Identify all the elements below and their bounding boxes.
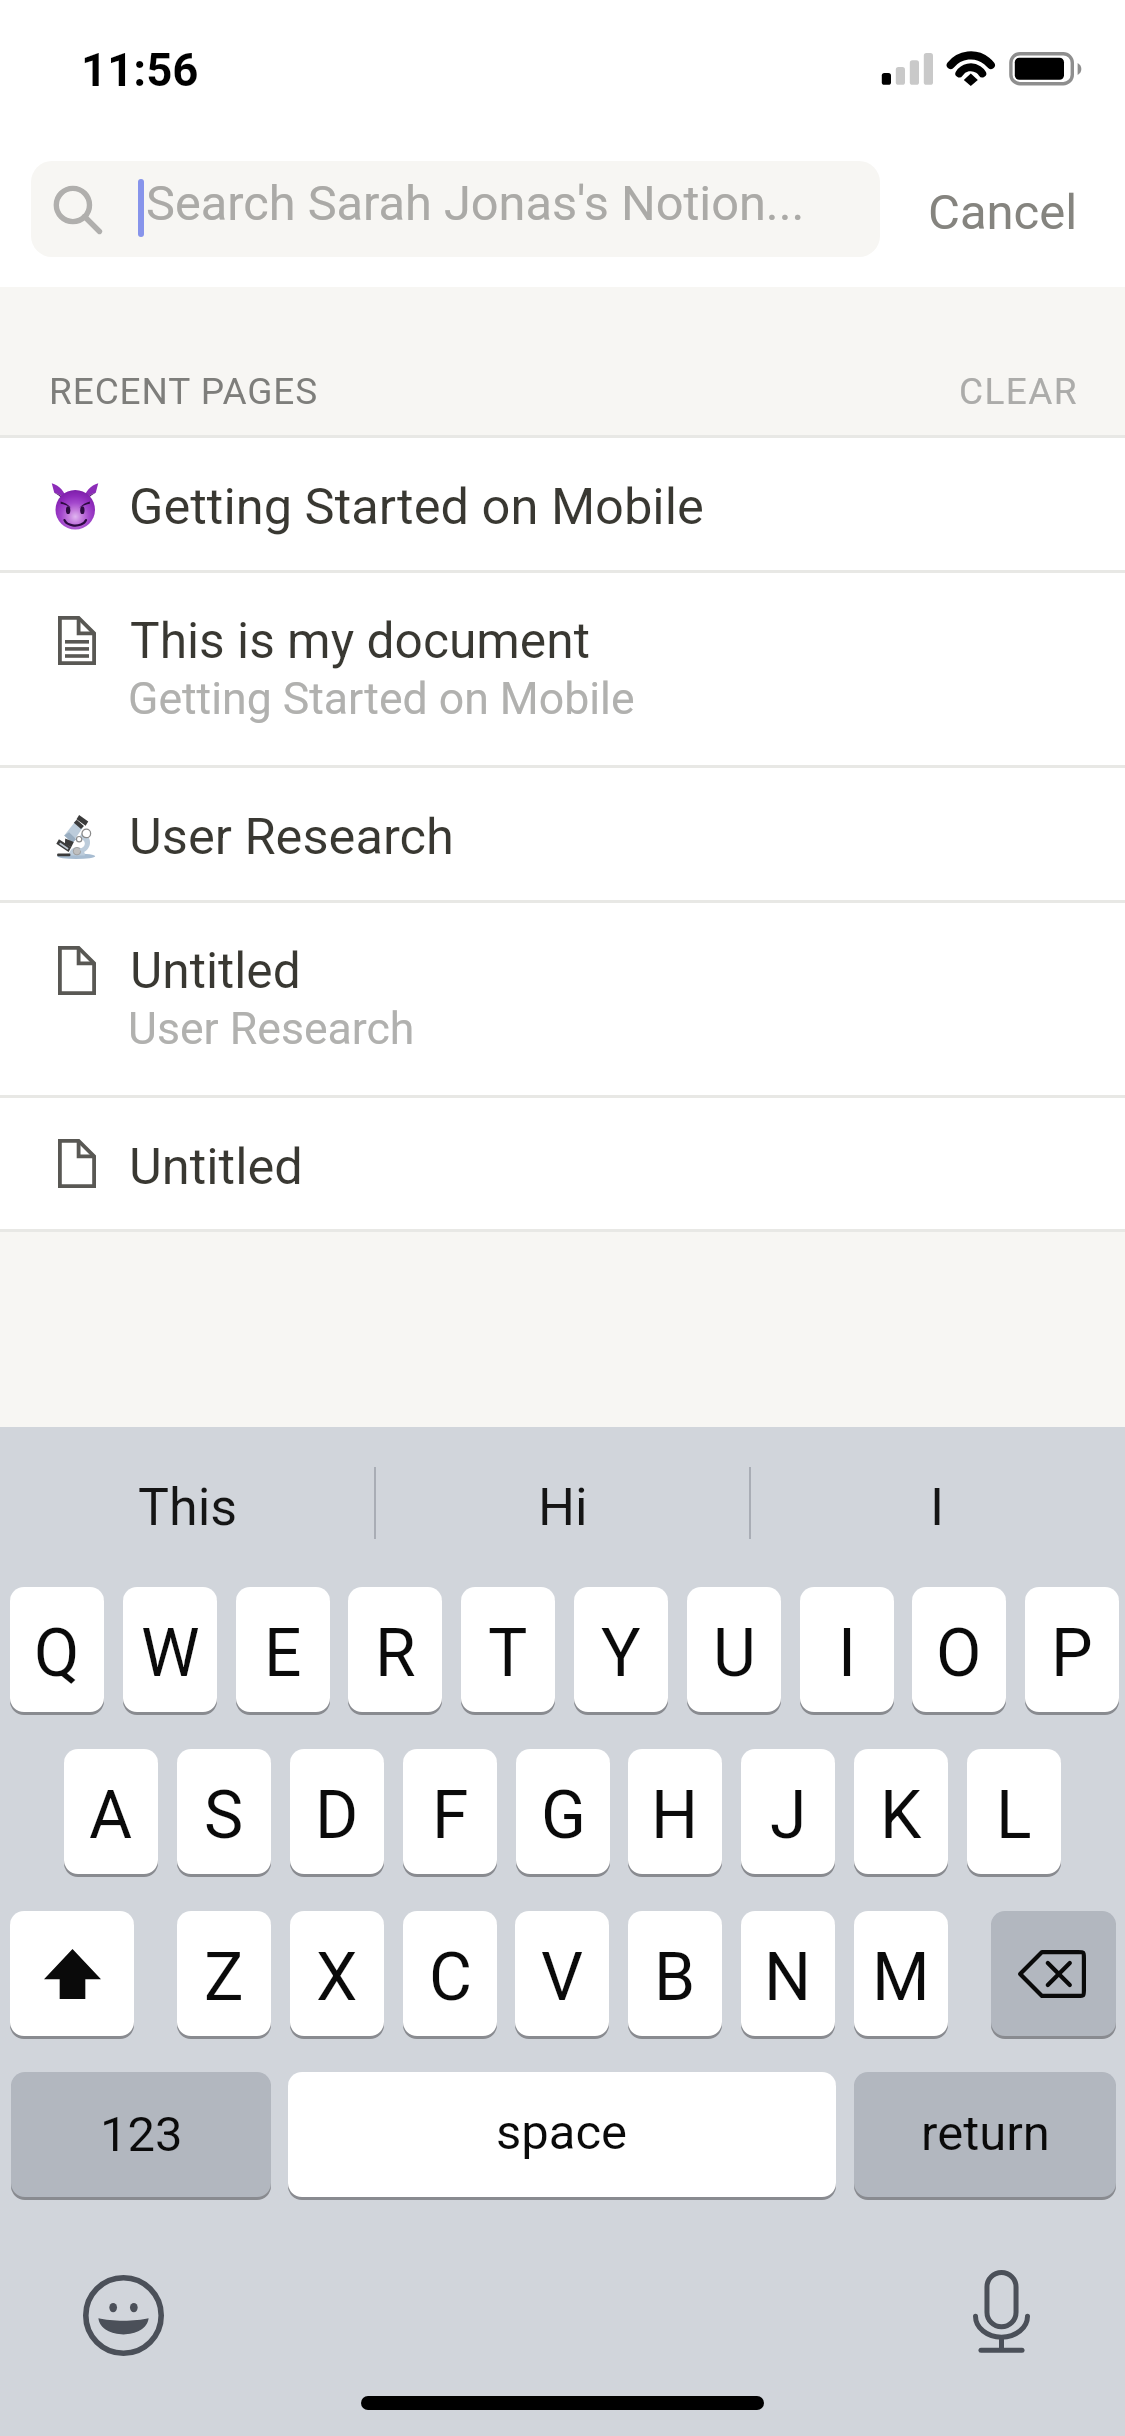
staticText: return: [921, 2105, 1050, 2162]
staticText: I: [930, 1477, 945, 1538]
button[interactable]: Dictation: [951, 2258, 1051, 2358]
button[interactable]: Q: [10, 1587, 104, 1712]
button[interactable]: CLEAR: [920, 339, 1125, 444]
staticText: M: [872, 1939, 930, 2016]
staticText: J: [770, 1777, 807, 1854]
staticText: RECENT PAGES: [49, 370, 319, 413]
button[interactable]: Getting Started on Mobile: [0, 436, 1125, 571]
button[interactable]: D: [290, 1749, 384, 1874]
staticText: space: [496, 2104, 628, 2161]
staticText: T: [488, 1615, 528, 1692]
staticText: F: [432, 1777, 469, 1854]
staticText: E: [264, 1615, 302, 1692]
staticText: P: [1051, 1615, 1093, 1692]
button[interactable]: U: [687, 1587, 781, 1712]
button[interactable]: N: [741, 1911, 835, 2036]
button[interactable]: C: [403, 1911, 497, 2036]
button[interactable]: T: [461, 1587, 555, 1712]
staticText: B: [654, 1939, 696, 2016]
button[interactable]: E: [236, 1587, 330, 1712]
staticText: Getting Started on Mobile: [128, 673, 635, 725]
staticText: N: [764, 1939, 812, 2016]
staticText: I: [838, 1615, 856, 1692]
staticText: 123: [100, 2106, 183, 2163]
button[interactable]: User Research: [0, 766, 1125, 901]
staticText: A: [89, 1777, 133, 1854]
button[interactable]: F: [403, 1749, 497, 1874]
button[interactable]: Z: [177, 1911, 271, 2036]
staticText: W: [141, 1615, 200, 1692]
staticText: Untitled: [129, 1137, 303, 1196]
staticText: V: [541, 1939, 584, 2016]
button[interactable]: G: [516, 1749, 610, 1874]
staticText: C: [429, 1939, 472, 2016]
staticText: O: [936, 1615, 982, 1692]
button[interactable]: A: [64, 1749, 158, 1874]
staticText: X: [316, 1939, 358, 2016]
button[interactable]: M: [854, 1911, 948, 2036]
staticText: Y: [601, 1615, 641, 1692]
staticText: D: [315, 1777, 359, 1854]
button[interactable]: Untitled: [0, 901, 1125, 1096]
staticText: H: [651, 1777, 699, 1854]
button[interactable]: I: [800, 1587, 894, 1712]
staticText: Untitled: [130, 942, 301, 1000]
button[interactable]: Y: [574, 1587, 668, 1712]
button[interactable]: J: [741, 1749, 835, 1874]
staticText: User Research: [128, 1003, 415, 1055]
button[interactable]: H: [628, 1749, 722, 1874]
button[interactable]: return: [854, 2072, 1116, 2197]
button[interactable]: This is my document: [0, 571, 1125, 766]
button[interactable]: O: [912, 1587, 1006, 1712]
button[interactable]: 123: [11, 2072, 271, 2197]
button[interactable]: K: [854, 1749, 948, 1874]
button[interactable]: W: [123, 1587, 217, 1712]
button[interactable]: S: [177, 1749, 271, 1874]
staticText: This is my document: [130, 612, 590, 670]
staticText: S: [204, 1777, 244, 1854]
staticText: Cancel: [928, 184, 1078, 241]
button[interactable]: Hi: [375, 1427, 750, 1587]
staticText: CLEAR: [959, 370, 1078, 413]
staticText: This: [138, 1477, 238, 1538]
button[interactable]: V: [515, 1911, 609, 2036]
staticText: L: [996, 1777, 1032, 1854]
button[interactable]: Cancel: [880, 164, 1125, 260]
staticText: G: [541, 1777, 586, 1854]
staticText: Search Sarah Jonas's Notion...: [146, 175, 805, 232]
button[interactable]: This: [0, 1427, 375, 1587]
button[interactable]: Delete: [991, 1911, 1116, 2036]
button[interactable]: L: [967, 1749, 1061, 1874]
button[interactable]: space: [288, 2072, 836, 2197]
button[interactable]: P: [1025, 1587, 1119, 1712]
staticText: 11:56: [81, 44, 199, 97]
button[interactable]: X: [290, 1911, 384, 2036]
staticText: Getting Started on Mobile: [129, 477, 704, 536]
staticText: User Research: [129, 807, 454, 866]
button[interactable]: Search Sarah Jonas's Notion...: [31, 161, 880, 257]
staticText: Q: [34, 1615, 80, 1692]
staticText: K: [880, 1777, 922, 1854]
button[interactable]: I: [750, 1427, 1125, 1587]
button[interactable]: Shift: [10, 1911, 134, 2036]
staticText: U: [713, 1615, 756, 1692]
staticText: Hi: [538, 1477, 588, 1538]
staticText: R: [375, 1615, 416, 1692]
button[interactable]: B: [628, 1911, 722, 2036]
button[interactable]: Emoji keyboard: [74, 2266, 174, 2366]
button[interactable]: Untitled: [0, 1097, 1125, 1231]
staticText: Z: [204, 1939, 244, 2016]
button[interactable]: R: [348, 1587, 442, 1712]
